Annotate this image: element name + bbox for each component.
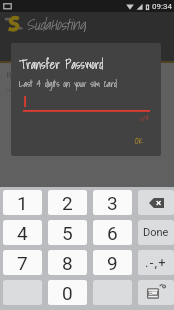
staticText: Transfer Password bbox=[19, 55, 104, 74]
button[interactable]: 0 bbox=[48, 280, 87, 305]
button[interactable]: 7 bbox=[3, 250, 42, 275]
button[interactable]: 3 bbox=[93, 190, 132, 215]
button[interactable]: OK bbox=[124, 131, 154, 149]
staticText: 1 bbox=[17, 192, 28, 214]
button[interactable]: 8 bbox=[48, 250, 87, 275]
staticText: 5 bbox=[62, 222, 73, 244]
button[interactable]: 4 bbox=[3, 220, 42, 245]
button[interactable]: 5 bbox=[48, 220, 87, 245]
staticText: 8 bbox=[62, 252, 73, 274]
staticText: 0 bbox=[62, 282, 73, 304]
button[interactable]: 6 bbox=[93, 220, 132, 245]
staticText: Last 4 digits on your sim card bbox=[19, 77, 117, 91]
staticText: 4 bbox=[17, 222, 28, 244]
staticText: No active plans bbox=[7, 85, 41, 95]
button[interactable]: Backspace bbox=[138, 190, 174, 215]
staticText: Hosting bbox=[7, 67, 29, 81]
staticText: 3 bbox=[107, 192, 118, 214]
button[interactable]: 9 bbox=[93, 250, 132, 275]
staticText: OK bbox=[135, 133, 144, 147]
button[interactable]: Done bbox=[138, 220, 174, 245]
button[interactable]: 2 bbox=[48, 190, 87, 215]
staticText: .-,+ bbox=[145, 255, 167, 270]
staticText: 09:34 bbox=[152, 2, 172, 11]
staticText: SudaHosting bbox=[26, 12, 86, 32]
button[interactable]: Switch keyboard bbox=[138, 280, 174, 305]
staticText: 2 bbox=[62, 192, 73, 214]
button[interactable]: 1 bbox=[3, 190, 42, 215]
staticText: 6 bbox=[107, 222, 118, 244]
staticText: 0/4 bbox=[23, 112, 149, 125]
staticText: 7 bbox=[17, 252, 28, 274]
button[interactable]: .-,+ bbox=[138, 250, 174, 275]
staticText: 9 bbox=[107, 252, 118, 274]
staticText: Done bbox=[143, 226, 169, 239]
